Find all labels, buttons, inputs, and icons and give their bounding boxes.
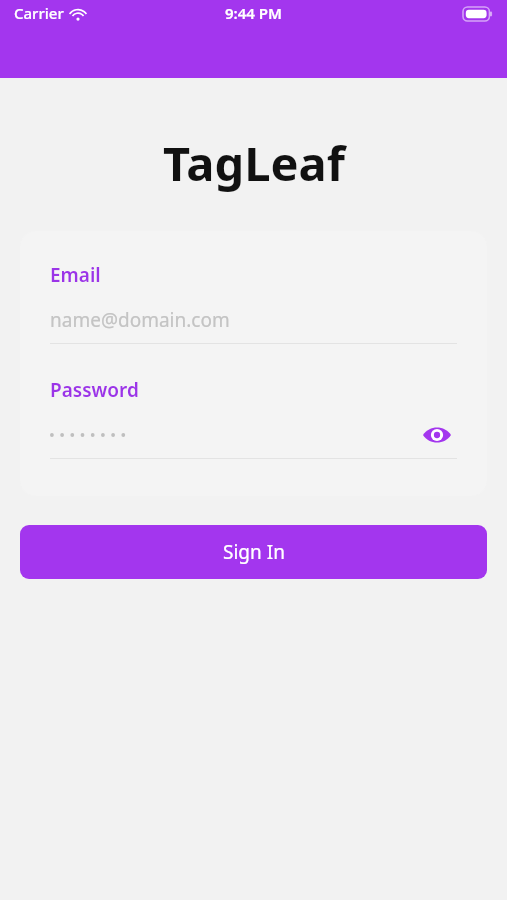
staticText: TagLeaf bbox=[163, 131, 345, 195]
button[interactable] bbox=[50, 418, 417, 452]
staticText: name@domain.com bbox=[50, 307, 230, 333]
staticText: Password bbox=[50, 377, 139, 403]
staticText: Sign In bbox=[223, 539, 285, 565]
button[interactable]: Show password bbox=[417, 418, 457, 452]
button[interactable]: name@domain.com bbox=[50, 303, 457, 337]
staticText: Carrier bbox=[14, 3, 64, 23]
staticText: Email bbox=[50, 262, 101, 288]
button[interactable]: Sign In bbox=[20, 525, 487, 579]
staticText: 9:44 PM bbox=[225, 3, 282, 23]
